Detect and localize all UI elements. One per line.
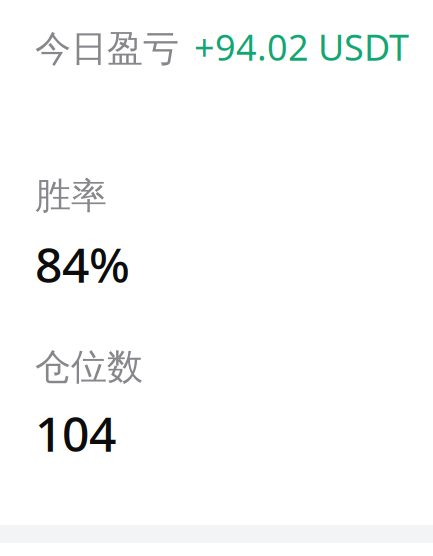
- staticText: 104: [35, 401, 116, 465]
- button[interactable]: 仓位数: [35, 345, 433, 465]
- button[interactable]: 胜率: [35, 174, 433, 296]
- staticText: 今日盈亏: [35, 27, 179, 71]
- button[interactable]: 今日盈亏: [35, 23, 433, 71]
- staticText: 仓位数: [35, 345, 143, 389]
- staticText: +94.02 USDT: [194, 23, 409, 71]
- staticText: 84%: [35, 232, 130, 296]
- staticText: 胜率: [35, 174, 107, 218]
